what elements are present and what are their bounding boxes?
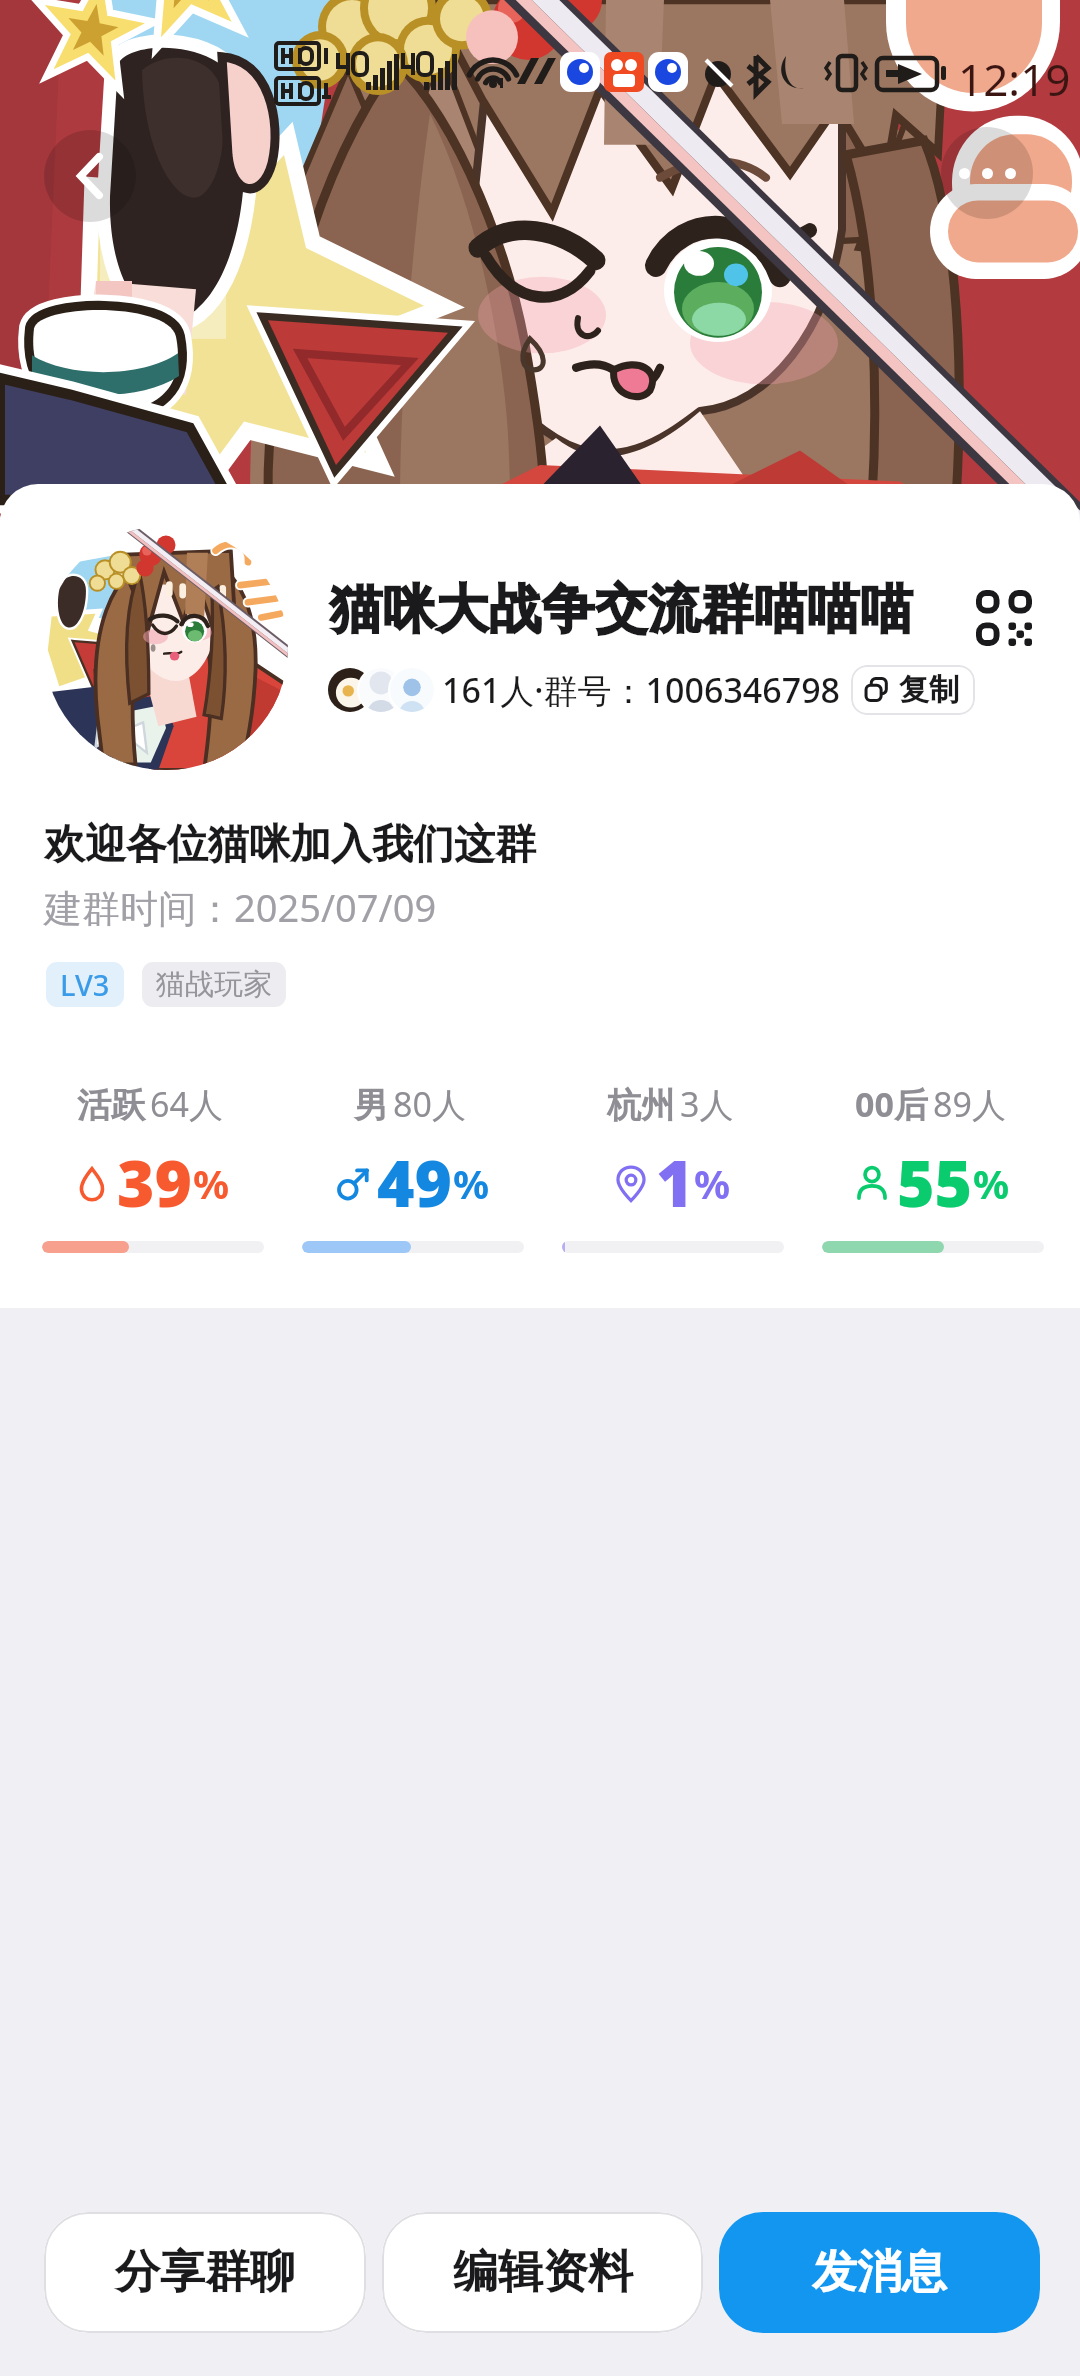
staticText: 80人 [393, 1081, 466, 1127]
staticText: 1 [656, 1139, 694, 1226]
staticText: 49 [377, 1139, 453, 1226]
staticText: 编辑资料 [453, 2244, 633, 2301]
staticText: 161人·群号：1006346798 [442, 667, 841, 713]
staticText: LV3 [60, 965, 110, 1004]
staticText: 分享群聊 [115, 2244, 295, 2301]
staticText: 12:19 [958, 49, 1071, 109]
button[interactable]: Group avatar [44, 526, 288, 770]
staticText: 复制 [899, 671, 959, 709]
button[interactable]: 复制 [851, 665, 975, 715]
staticText: 男 [354, 1084, 388, 1127]
staticText: 00后 [855, 1081, 928, 1127]
staticText: 活跃 [77, 1084, 145, 1127]
button[interactable]: LV3 [46, 962, 124, 1007]
staticText: % [694, 1156, 731, 1210]
staticText: % [973, 1156, 1010, 1210]
staticText: 猫战玩家 [156, 966, 272, 1003]
button[interactable]: 00后 [800, 1081, 1060, 1253]
staticText: 3人 [680, 1081, 734, 1127]
button[interactable]: 活跃 [20, 1081, 280, 1253]
staticText: 64人 [150, 1081, 223, 1127]
staticText: 发消息 [812, 2244, 947, 2301]
staticText: 39 [117, 1139, 193, 1226]
staticText: 猫咪大战争交流群喵喵喵 [330, 577, 914, 643]
button[interactable]: More options [941, 127, 1033, 219]
button[interactable]: 发消息 [719, 2212, 1040, 2333]
button[interactable]: Back [44, 130, 136, 222]
staticText: % [193, 1156, 230, 1210]
button[interactable]: 猫战玩家 [142, 962, 286, 1007]
button[interactable]: 男 [280, 1081, 540, 1253]
staticText: 55 [897, 1139, 973, 1226]
staticText: 89人 [933, 1081, 1006, 1127]
button[interactable]: 编辑资料 [382, 2212, 703, 2333]
staticText: 建群时间：2025/07/09 [44, 881, 437, 933]
staticText: % [453, 1156, 490, 1210]
staticText: 杭州 [607, 1084, 675, 1127]
button[interactable]: Group QR code [968, 582, 1040, 654]
button[interactable]: 分享群聊 [44, 2212, 366, 2333]
button[interactable]: 杭州 [540, 1081, 800, 1253]
staticText: 欢迎各位猫咪加入我们这群 [44, 819, 536, 871]
